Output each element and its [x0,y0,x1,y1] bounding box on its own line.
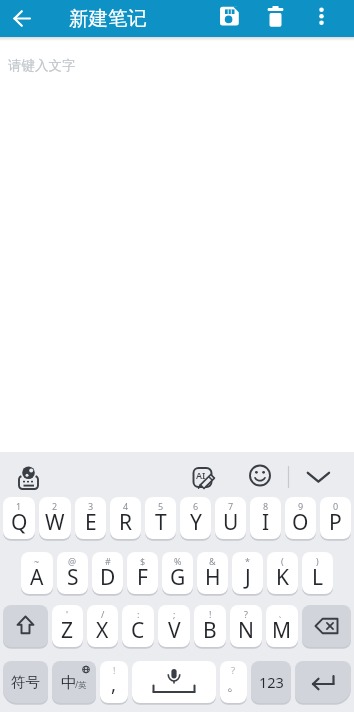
button[interactable]: % [162,552,193,594]
staticText: 1 [16,500,22,512]
staticText: G [170,563,186,592]
button[interactable]: $ [127,552,158,594]
staticText: 新建笔记 [69,6,147,31]
staticText: V [168,616,181,645]
staticText: /英 [75,679,87,691]
staticText: 123 [259,672,284,692]
button[interactable] [132,661,216,703]
staticText: Q [11,508,28,537]
staticText: 。 [227,677,241,694]
staticText: O [292,508,309,537]
button[interactable]: ' [52,605,83,647]
staticText: ? [244,608,248,620]
button[interactable]: 8 [250,497,281,539]
button[interactable] [209,0,254,37]
button[interactable]: ! [100,661,128,703]
staticText: AI [196,469,206,481]
staticText: ' [66,608,69,620]
button[interactable]: / [87,605,118,647]
button[interactable]: ~ [21,552,53,594]
staticText: B [203,616,217,645]
staticText: F [137,563,148,592]
button[interactable]: * [232,552,263,594]
button[interactable] [3,605,48,647]
button[interactable]: ) [302,552,333,594]
button[interactable] [302,452,338,494]
button[interactable]: ! [194,605,226,647]
staticText: L [312,563,324,592]
button[interactable]: & [197,552,228,594]
staticText: ( [281,555,284,567]
staticText: / [101,608,105,620]
staticText: S [67,563,79,592]
staticText: 7 [228,500,234,512]
staticText: I [262,508,270,537]
button[interactable]: # [92,552,123,594]
staticText: 请键入文字 [8,57,76,74]
button[interactable]: @ [57,552,88,594]
staticText: D [100,563,116,592]
staticText: X [96,616,109,645]
button[interactable]: 、 [266,605,298,647]
staticText: M [272,616,292,645]
staticText: ? [231,664,236,677]
staticText: % [174,555,182,567]
button[interactable]: 0 [320,497,351,539]
staticText: ) [316,555,319,567]
staticText: H [205,563,221,592]
staticText: 5 [158,500,164,512]
staticText: Z [61,616,74,645]
staticText: @ [68,555,77,567]
button[interactable]: 6 [180,497,211,539]
staticText: C [131,616,145,645]
button[interactable]: 2 [39,497,71,539]
staticText: ! [209,608,212,620]
staticText: ! [113,664,116,677]
staticText: Y [190,508,202,537]
staticText: 3 [88,500,94,512]
button[interactable] [0,0,44,37]
button[interactable] [10,452,48,494]
button[interactable]: 5 [145,497,176,539]
button[interactable] [242,452,278,494]
button[interactable]: AI [186,452,224,494]
staticText: & [209,555,216,567]
staticText: # [105,555,111,567]
button[interactable]: : [122,605,154,647]
button[interactable]: ( [267,552,298,594]
button[interactable]: 123 [251,661,291,703]
staticText: 8 [263,500,269,512]
button[interactable]: 符号 [3,661,48,703]
button[interactable] [295,661,351,703]
staticText: : [137,608,140,620]
button[interactable] [302,605,351,647]
button[interactable]: ? [230,605,262,647]
staticText: J [245,563,251,592]
staticText: 符号 [11,673,40,691]
staticText: 2 [52,500,58,512]
button[interactable]: 3 [75,497,106,539]
button[interactable]: ? [220,661,247,703]
button[interactable]: ; [158,605,190,647]
button[interactable]: 7 [215,497,246,539]
button[interactable]: 请键入文字 [0,37,354,452]
button[interactable] [254,0,299,37]
staticText: 6 [193,500,199,512]
button[interactable]: 中 [52,661,96,703]
staticText: 、 [278,608,287,619]
button[interactable]: 9 [285,497,316,539]
staticText: ; [173,608,176,620]
button[interactable]: 4 [110,497,141,539]
staticText: $ [140,555,146,567]
staticText: A [30,563,44,592]
staticText: P [329,508,342,537]
button[interactable]: 1 [3,497,35,539]
staticText: K [276,563,289,592]
staticText: N [238,616,254,645]
staticText: 9 [298,500,304,512]
staticText: W [45,508,65,537]
staticText: 4 [123,500,129,512]
button[interactable] [299,0,344,37]
staticText: ~ [34,555,40,567]
staticText: * [245,555,250,567]
